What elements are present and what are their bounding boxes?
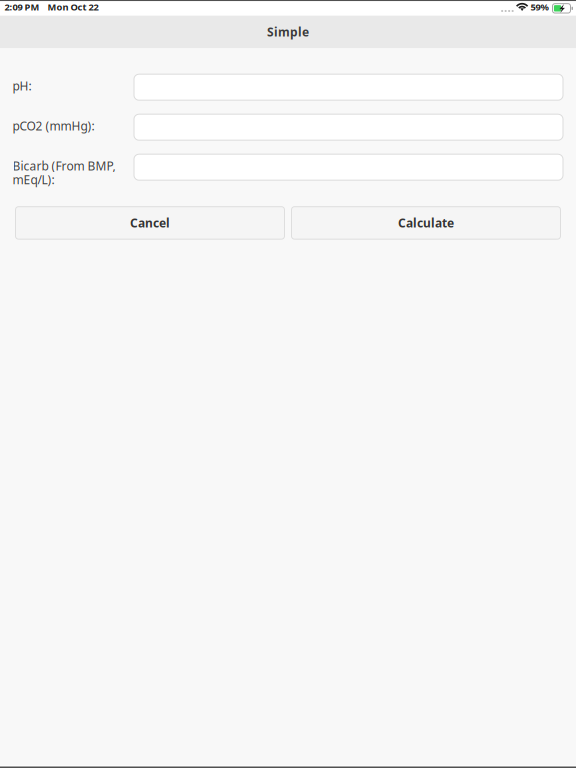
button[interactable]: pCO2 (mmHg)	[134, 114, 563, 140]
button[interactable]: Bicarb (From BMP, mEq/L)	[134, 154, 563, 180]
button[interactable]: pH	[134, 74, 563, 100]
button[interactable]: Calculate	[291, 207, 560, 239]
staticText: 59%	[530, 1, 548, 13]
staticText: Bicarb (From BMP,	[12, 158, 115, 174]
staticText: mEq/L):	[12, 172, 54, 188]
staticText: Mon Oct 22	[47, 1, 98, 13]
staticText: Calculate	[398, 215, 454, 231]
staticText: Cancel	[130, 215, 170, 231]
button[interactable]: Cancel	[15, 207, 284, 239]
staticText: pCO2 (mmHg):	[12, 118, 94, 134]
staticText: pH:	[12, 78, 31, 94]
staticText: 2:09 PM	[4, 1, 39, 13]
staticText: Simple	[267, 24, 309, 40]
